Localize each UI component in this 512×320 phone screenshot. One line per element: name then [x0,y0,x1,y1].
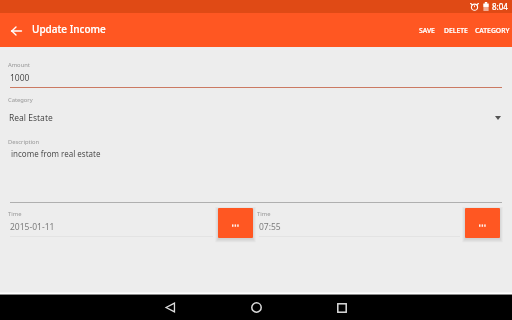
staticText: Time [257,210,271,218]
button[interactable]: SAVE [415,18,439,43]
staticText: Update Income [32,22,106,36]
button[interactable]: Category [8,93,502,127]
button[interactable]: DELETE [440,18,472,43]
staticText: SAVE [419,26,435,35]
button[interactable]: Time [257,207,460,237]
staticText: 07:55 [259,221,281,233]
button[interactable]: Description [8,135,502,197]
button[interactable]: Select category [488,108,508,128]
staticText: Real Estate [9,112,53,124]
staticText: Time [8,210,22,218]
button[interactable]: Recent apps [326,295,358,320]
button[interactable]: Amount [8,58,502,88]
staticText: 2015-01-11 [10,221,55,233]
button[interactable]: Navigate up [5,20,27,42]
staticText: 8:04 [492,1,508,12]
staticText: DELETE [444,26,468,35]
staticText: CATEGORY [475,26,510,35]
staticText: Amount [8,61,30,69]
button[interactable]: Back [154,295,186,320]
button[interactable]: Home [240,295,272,320]
staticText: 1000 [10,72,30,84]
staticText: Category [8,96,33,104]
button[interactable]: More options [465,208,500,238]
staticText: income from real estate [11,148,101,159]
staticText: Description [8,138,40,146]
button[interactable]: Time [8,207,213,237]
button[interactable]: More options [218,208,253,238]
button[interactable]: CATEGORY [471,18,512,43]
